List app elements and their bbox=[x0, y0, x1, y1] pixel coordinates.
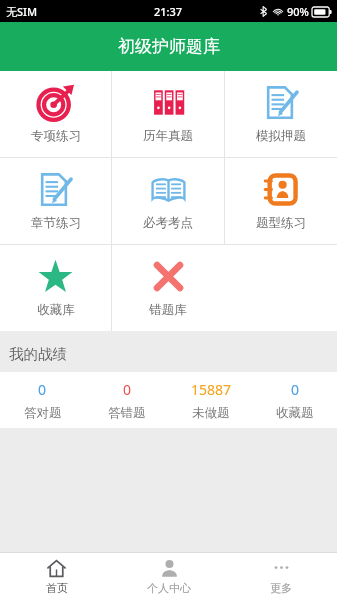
staticText: 答错题 bbox=[108, 405, 146, 421]
staticText: 90% bbox=[287, 4, 309, 19]
staticText: 15887 bbox=[191, 380, 232, 399]
button[interactable]: 收藏库 bbox=[0, 245, 111, 331]
staticText: 收藏题 bbox=[276, 405, 314, 421]
button[interactable]: 历年真题 bbox=[112, 71, 224, 157]
staticText: 模拟押题 bbox=[256, 128, 306, 144]
button[interactable]: 专项练习 bbox=[0, 71, 111, 157]
staticText: 无SIM bbox=[6, 4, 38, 19]
staticText: 收藏库 bbox=[37, 302, 75, 318]
button[interactable]: 更多 bbox=[225, 553, 337, 600]
staticText: 错题库 bbox=[149, 302, 187, 318]
staticText: 首页 bbox=[46, 581, 68, 595]
staticText: 0 bbox=[291, 380, 300, 399]
staticText: 章节练习 bbox=[31, 215, 81, 231]
staticText: 题型练习 bbox=[256, 215, 306, 231]
staticText: 专项练习 bbox=[31, 128, 81, 144]
staticText: 更多 bbox=[270, 581, 292, 595]
staticText: 未做题 bbox=[192, 405, 230, 421]
button[interactable]: 0 bbox=[85, 372, 169, 428]
staticText: 个人中心 bbox=[147, 581, 191, 595]
staticText: 0 bbox=[123, 380, 132, 399]
staticText: 初级护师题库 bbox=[118, 36, 220, 57]
button[interactable]: 个人中心 bbox=[113, 553, 225, 600]
staticText: 答对题 bbox=[24, 405, 62, 421]
staticText: 21:37 bbox=[154, 4, 183, 19]
staticText: 我的战绩 bbox=[9, 345, 67, 363]
button[interactable]: 题型练习 bbox=[225, 158, 337, 244]
button[interactable]: 错题库 bbox=[112, 245, 224, 331]
staticText: 0 bbox=[38, 380, 47, 399]
button[interactable]: 首页 bbox=[0, 553, 113, 600]
button[interactable]: 15887 bbox=[169, 372, 253, 428]
button[interactable]: 0 bbox=[253, 372, 337, 428]
button[interactable]: 章节练习 bbox=[0, 158, 111, 244]
button[interactable]: 必考考点 bbox=[112, 158, 224, 244]
button[interactable]: 模拟押题 bbox=[225, 71, 337, 157]
staticText: 历年真题 bbox=[143, 128, 193, 144]
button[interactable]: 0 bbox=[0, 372, 85, 428]
staticText: 必考考点 bbox=[143, 215, 193, 231]
